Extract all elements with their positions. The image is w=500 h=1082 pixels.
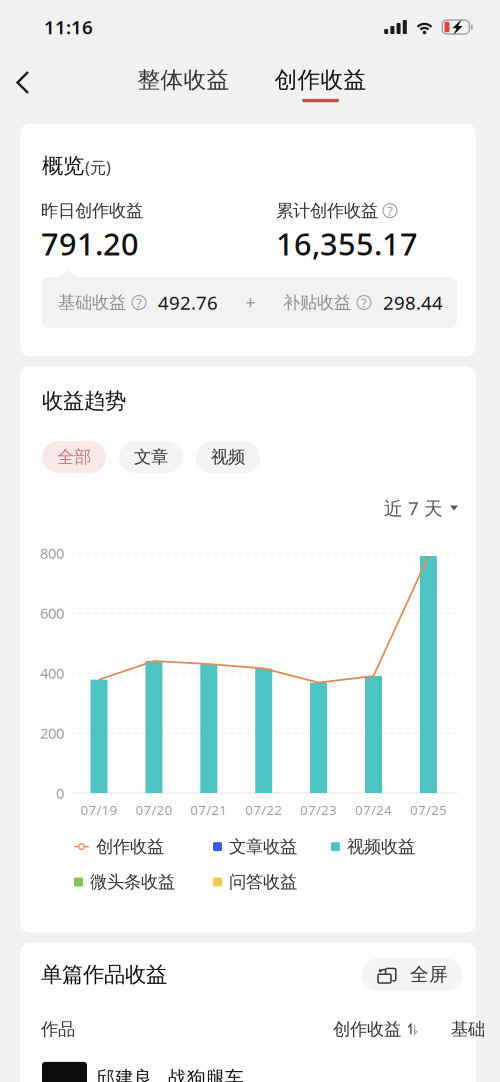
staticText: 全屏: [410, 963, 448, 986]
button[interactable]: 整体收益: [137, 58, 229, 106]
staticText: 800: [40, 543, 64, 563]
staticText: 492.76: [158, 290, 218, 315]
staticText: 概览: [42, 153, 84, 179]
button[interactable]: 全部: [42, 441, 106, 473]
staticText: 昨日创作收益: [41, 200, 143, 221]
staticText: 文章收益: [229, 836, 297, 857]
staticText: 微头条收益: [90, 871, 175, 893]
staticText: 视频收益: [347, 836, 415, 857]
staticText: 单篇作品收益: [41, 961, 167, 988]
staticText: +: [245, 291, 255, 314]
button[interactable]: 文章: [119, 441, 183, 473]
staticText: 0: [56, 783, 64, 803]
staticText: ?: [361, 294, 367, 311]
staticText: 基础收益: [58, 292, 126, 313]
staticText: 07/22: [245, 801, 282, 819]
staticText: 07/21: [190, 801, 227, 819]
staticText: 11:16: [44, 15, 93, 39]
button[interactable]: Back: [0, 58, 46, 106]
staticText: 200: [40, 723, 64, 743]
staticText: 创作收益: [96, 836, 164, 857]
staticText: 文章: [134, 446, 168, 468]
button[interactable]: 创作收益: [274, 58, 366, 102]
staticText: 07/23: [300, 801, 337, 819]
staticText: ?: [387, 202, 393, 219]
staticText: ?: [136, 294, 142, 311]
staticText: 400: [40, 663, 64, 683]
staticText: 累计创作收益: [276, 200, 378, 221]
staticText: 07/20: [135, 801, 172, 819]
staticText: 视频: [211, 446, 245, 468]
staticText: 07/24: [355, 801, 392, 819]
button[interactable]: 近 7 天: [384, 495, 458, 521]
staticText: 07/19: [80, 801, 117, 819]
staticText: 问答收益: [229, 871, 297, 893]
staticText: 07/25: [410, 801, 447, 819]
button[interactable]: 视频: [196, 441, 260, 473]
staticText: 作品: [41, 1019, 75, 1040]
staticText: 近 7 天: [384, 496, 443, 520]
staticText: 全部: [57, 446, 91, 468]
staticText: 创作收益: [333, 1019, 401, 1040]
staticText: 创作收益: [274, 66, 366, 94]
button[interactable]: 全屏: [362, 958, 462, 991]
staticText: 整体收益: [137, 66, 229, 94]
staticText: 600: [40, 603, 64, 623]
staticText: (元): [85, 157, 111, 178]
staticText: 补贴收益: [283, 292, 351, 313]
staticText: 298.44: [383, 290, 443, 315]
staticText: 16,355.17: [276, 223, 418, 264]
staticText: 邱建良…战狗腿车: [96, 1065, 244, 1082]
staticText: 基础: [451, 1019, 485, 1040]
staticText: 收益趋势: [42, 388, 126, 414]
staticText: 791.20: [41, 223, 139, 264]
